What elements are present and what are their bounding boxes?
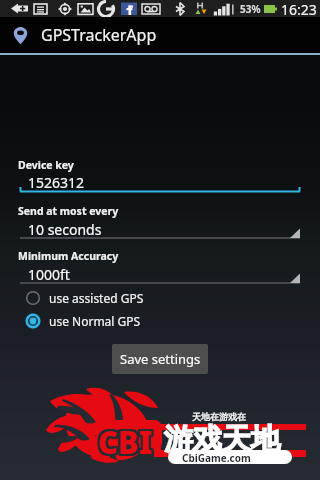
staticText: 1000ft bbox=[28, 265, 70, 284]
staticText: CBI bbox=[98, 419, 153, 461]
button[interactable]: 1000ft bbox=[14, 265, 306, 284]
staticText: 16:23 bbox=[281, 0, 317, 17]
button[interactable]: 1526312 bbox=[14, 173, 306, 194]
staticText: Send at most every bbox=[18, 204, 119, 218]
staticText: 天地在游戏在 bbox=[192, 411, 246, 422]
staticText: use assisted GPS bbox=[49, 290, 144, 306]
staticText: 游戏天地 bbox=[164, 421, 280, 458]
staticText: CBI bbox=[96, 421, 151, 463]
staticText: Minimum Accuracy bbox=[18, 249, 119, 263]
button[interactable]: Save settings bbox=[112, 344, 208, 374]
button[interactable]: 10 seconds bbox=[14, 220, 306, 239]
staticText: CBI bbox=[98, 423, 153, 465]
staticText: 1526312 bbox=[28, 173, 85, 192]
staticText: CBI bbox=[96, 423, 151, 465]
staticText: CBI bbox=[96, 419, 151, 461]
staticText: 53% bbox=[240, 2, 261, 16]
staticText: CBI bbox=[100, 419, 155, 461]
staticText: CBI bbox=[98, 421, 153, 463]
staticText: CBI bbox=[100, 423, 155, 465]
staticText: Device key bbox=[18, 158, 74, 172]
staticText: use Normal GPS bbox=[49, 313, 141, 329]
button[interactable]: use Normal GPS bbox=[14, 310, 306, 332]
staticText: Save settings bbox=[120, 350, 201, 368]
staticText: CbiGame.com bbox=[182, 451, 251, 465]
button[interactable]: use assisted GPS bbox=[14, 287, 306, 309]
staticText: 10 seconds bbox=[28, 220, 102, 239]
staticText: GPSTrackerApp bbox=[41, 24, 157, 46]
staticText: CBI bbox=[100, 421, 155, 463]
